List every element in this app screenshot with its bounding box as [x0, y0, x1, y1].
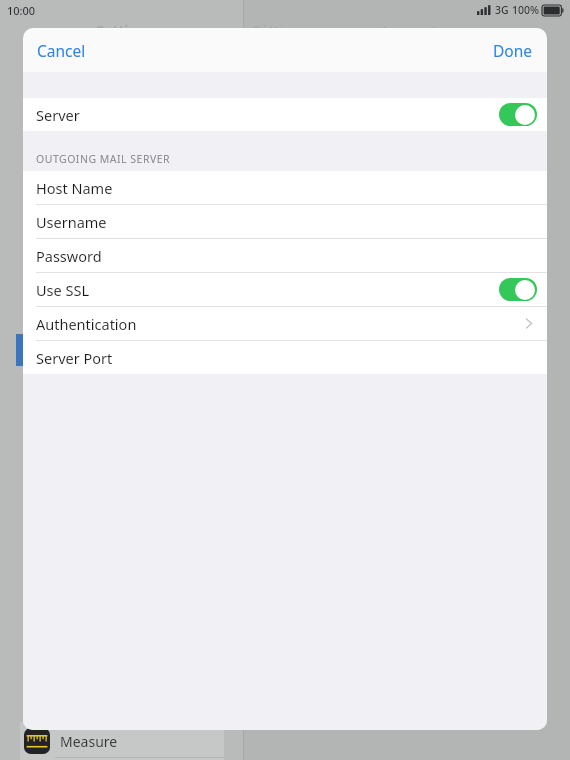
staticText: Username: [36, 212, 107, 232]
staticText: Done: [493, 40, 533, 61]
staticText: Use SSL: [36, 280, 90, 300]
button[interactable]: Done: [481, 32, 545, 69]
button[interactable]: Toggle on: [499, 103, 537, 126]
button[interactable]: Host Name: [23, 171, 547, 204]
staticText: Host Name: [36, 178, 113, 198]
button[interactable]: Username: [23, 205, 547, 238]
button[interactable]: Server: [23, 98, 547, 131]
staticText: Server Port: [36, 348, 113, 368]
staticText: Settings: [96, 20, 155, 40]
staticText: Cancel: [37, 40, 86, 61]
staticText: 3G: [495, 3, 509, 17]
staticText: Séttings: [252, 20, 310, 40]
staticText: Password: [36, 246, 102, 266]
staticText: Account: [380, 20, 438, 40]
button[interactable]: Cancel: [25, 32, 98, 69]
staticText: Measure: [60, 732, 118, 751]
staticText: 100%: [512, 3, 539, 17]
button[interactable]: Server Port: [23, 341, 547, 374]
staticText: OUTGOING MAIL SERVER: [36, 152, 171, 166]
staticText: Server: [36, 105, 80, 125]
button[interactable]: Authentication: [23, 307, 547, 340]
button[interactable]: Toggle on: [499, 278, 537, 301]
staticText: 10:00: [7, 3, 36, 18]
button[interactable]: Password: [23, 239, 547, 272]
button[interactable]: Measure: [20, 722, 224, 760]
staticText: Authentication: [36, 314, 137, 334]
button[interactable]: Use SSL: [23, 273, 547, 306]
